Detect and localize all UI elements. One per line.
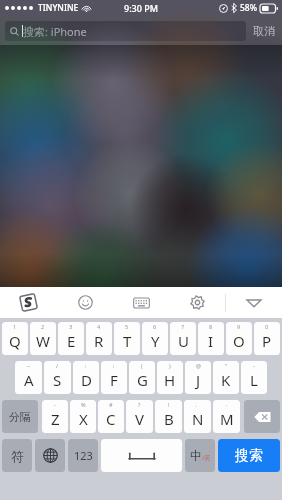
- staticText: 搜索: [235, 447, 263, 465]
- button[interactable]: 3: [58, 322, 84, 355]
- staticText: L: [250, 370, 258, 390]
- staticText: -: [253, 362, 255, 369]
- staticText: /英: [202, 454, 211, 462]
- staticText: 5: [125, 323, 129, 330]
- staticText: %: [81, 401, 86, 408]
- staticText: 3: [69, 323, 73, 330]
- button[interactable]: 取消: [251, 21, 277, 41]
- staticText: ": [225, 362, 228, 369]
- staticText: D: [81, 370, 92, 390]
- staticText: S: [53, 370, 62, 390]
- staticText: 6: [153, 323, 157, 330]
- staticText: 1: [13, 323, 17, 330]
- staticText: 123: [74, 448, 93, 463]
- button[interactable]: @: [185, 361, 211, 394]
- staticText: M: [220, 409, 234, 429]
- button[interactable]: !: [155, 400, 182, 433]
- staticText: 、: [195, 401, 201, 408]
- staticText: J: [196, 370, 201, 390]
- staticText: B: [164, 409, 174, 429]
- staticText: I: [208, 331, 214, 351]
- button[interactable]: ;: [101, 361, 127, 394]
- staticText: Z: [51, 409, 60, 429]
- button[interactable]: :: [73, 361, 99, 394]
- staticText: 58%: [240, 2, 257, 14]
- button[interactable]: Space: [101, 439, 182, 472]
- staticText: ?: [138, 401, 141, 408]
- staticText: E: [67, 331, 76, 351]
- staticText: C: [106, 409, 116, 429]
- button[interactable]: 、: [184, 400, 211, 433]
- staticText: V: [135, 409, 145, 429]
- button[interactable]: 123: [68, 439, 98, 472]
- button[interactable]: 1: [2, 322, 28, 355]
- staticText: P: [262, 331, 272, 351]
- button[interactable]: ·: [213, 400, 240, 433]
- staticText: 8: [209, 323, 213, 330]
- staticText: 0: [265, 323, 269, 330]
- staticText: K: [221, 370, 231, 390]
- button[interactable]: Hide keyboard: [226, 287, 282, 318]
- staticText: ): [169, 362, 171, 369]
- button[interactable]: Change language: [35, 439, 65, 472]
- staticText: 4: [97, 323, 101, 330]
- button[interactable]: ?: [126, 400, 153, 433]
- staticText: Y: [151, 331, 160, 351]
- button[interactable]: 5: [114, 322, 140, 355]
- staticText: ;: [113, 362, 115, 369]
- staticText: 符: [11, 448, 24, 464]
- staticText: #: [109, 401, 113, 408]
- button[interactable]: 4: [86, 322, 112, 355]
- staticText: T: [123, 331, 132, 351]
- staticText: X: [79, 409, 88, 429]
- staticText: (: [141, 362, 143, 369]
- button[interactable]: Settings: [169, 287, 225, 318]
- button[interactable]: 6: [142, 322, 168, 355]
- staticText: -: [54, 401, 56, 408]
- button[interactable]: 9: [226, 322, 252, 355]
- staticText: G: [137, 370, 148, 390]
- staticText: 分隔: [9, 410, 31, 424]
- button[interactable]: 2: [30, 322, 56, 355]
- staticText: U: [178, 331, 189, 351]
- staticText: 7: [181, 323, 185, 330]
- staticText: TINYNINE: [38, 2, 79, 14]
- staticText: O: [233, 331, 245, 351]
- button[interactable]: 符: [2, 439, 32, 472]
- staticText: 搜索: iPhone: [23, 24, 87, 39]
- button[interactable]: -: [42, 400, 68, 433]
- staticText: Q: [9, 331, 21, 351]
- staticText: 9:30 PM: [124, 2, 158, 14]
- button[interactable]: Emoji: [57, 287, 113, 318]
- button[interactable]: 8: [198, 322, 224, 355]
- button[interactable]: 中: [185, 439, 215, 472]
- button[interactable]: /: [44, 361, 71, 394]
- button[interactable]: ": [213, 361, 239, 394]
- button[interactable]: (: [129, 361, 155, 394]
- button[interactable]: %: [70, 400, 96, 433]
- staticText: W: [36, 331, 50, 351]
- button[interactable]: #: [98, 400, 124, 433]
- staticText: /: [56, 362, 59, 369]
- button[interactable]: -: [241, 361, 267, 394]
- staticText: F: [110, 370, 118, 390]
- button[interactable]: Keyboard: [113, 287, 169, 318]
- button[interactable]: 分隔: [2, 400, 38, 433]
- button[interactable]: 搜索: [218, 439, 280, 472]
- button[interactable]: 搜索: iPhone: [5, 21, 246, 41]
- button[interactable]: 0: [254, 322, 280, 355]
- staticText: 中: [190, 448, 202, 463]
- staticText: :: [85, 362, 87, 369]
- staticText: H: [164, 370, 176, 390]
- button[interactable]: Backspace: [244, 400, 280, 433]
- staticText: 2: [41, 323, 45, 330]
- staticText: !: [168, 401, 170, 408]
- button[interactable]: ): [157, 361, 183, 394]
- staticText: ·: [226, 401, 228, 408]
- staticText: 取消: [253, 24, 275, 38]
- button[interactable]: 7: [170, 322, 196, 355]
- staticText: 9: [237, 323, 241, 330]
- button[interactable]: Sogou input: [0, 287, 57, 318]
- staticText: R: [94, 331, 104, 351]
- button[interactable]: ~: [15, 361, 42, 394]
